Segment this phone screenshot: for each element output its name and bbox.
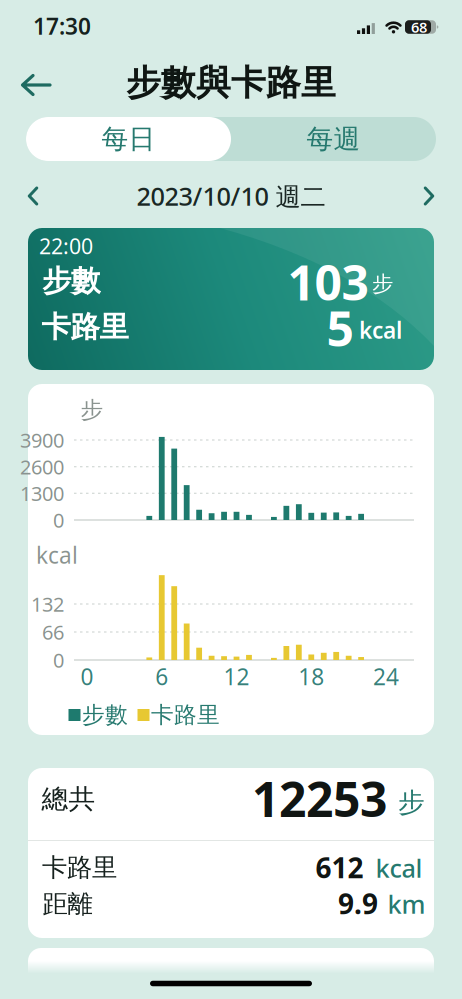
staticText: 每週 xyxy=(306,123,360,155)
staticText: 距離 xyxy=(42,888,92,919)
staticText: 卡路里 xyxy=(42,852,117,883)
button[interactable]: 每日 xyxy=(26,117,231,161)
staticText: 68 xyxy=(411,17,427,37)
staticText: 66 xyxy=(42,619,64,645)
button[interactable] xyxy=(11,176,55,216)
staticText: 12 xyxy=(223,661,249,691)
staticText: 0 xyxy=(80,661,93,691)
staticText: 2600 xyxy=(20,453,64,480)
staticText: 每日 xyxy=(101,123,155,155)
staticText: 6 xyxy=(155,661,168,691)
staticText: 步數與卡路里 xyxy=(126,62,336,104)
staticText: 總共 xyxy=(41,783,95,815)
staticText: 步 xyxy=(80,396,103,424)
staticText: 103 xyxy=(287,250,368,314)
staticText: 24 xyxy=(373,661,399,691)
staticText: 2023/10/10 週二 xyxy=(136,179,325,213)
staticText: 步 xyxy=(372,271,393,297)
staticText: 3900 xyxy=(20,427,64,453)
button[interactable] xyxy=(14,63,58,107)
staticText: 17:30 xyxy=(33,11,91,41)
staticText: 步數 xyxy=(82,701,128,729)
staticText: 22:00 xyxy=(39,232,93,260)
staticText: 132 xyxy=(31,591,64,617)
staticText: kcal xyxy=(359,315,402,345)
staticText: 0 xyxy=(53,507,64,533)
staticText: 0 xyxy=(53,647,64,673)
staticText: 步數 xyxy=(42,263,100,299)
staticText: 5 xyxy=(326,296,353,360)
staticText: 12253 xyxy=(252,767,387,830)
staticText: 步 xyxy=(398,786,425,819)
button[interactable] xyxy=(407,176,451,216)
staticText: 卡路里 xyxy=(151,701,220,729)
staticText: 9.9 xyxy=(338,885,378,922)
button[interactable]: 每週 xyxy=(231,117,436,161)
staticText: 卡路里 xyxy=(41,309,128,345)
staticText: km xyxy=(387,887,425,921)
staticText: 1300 xyxy=(20,480,64,507)
staticText: 612 xyxy=(315,849,363,886)
staticText: kcal xyxy=(36,540,78,570)
staticText: kcal xyxy=(375,851,422,885)
staticText: 18 xyxy=(298,661,324,691)
